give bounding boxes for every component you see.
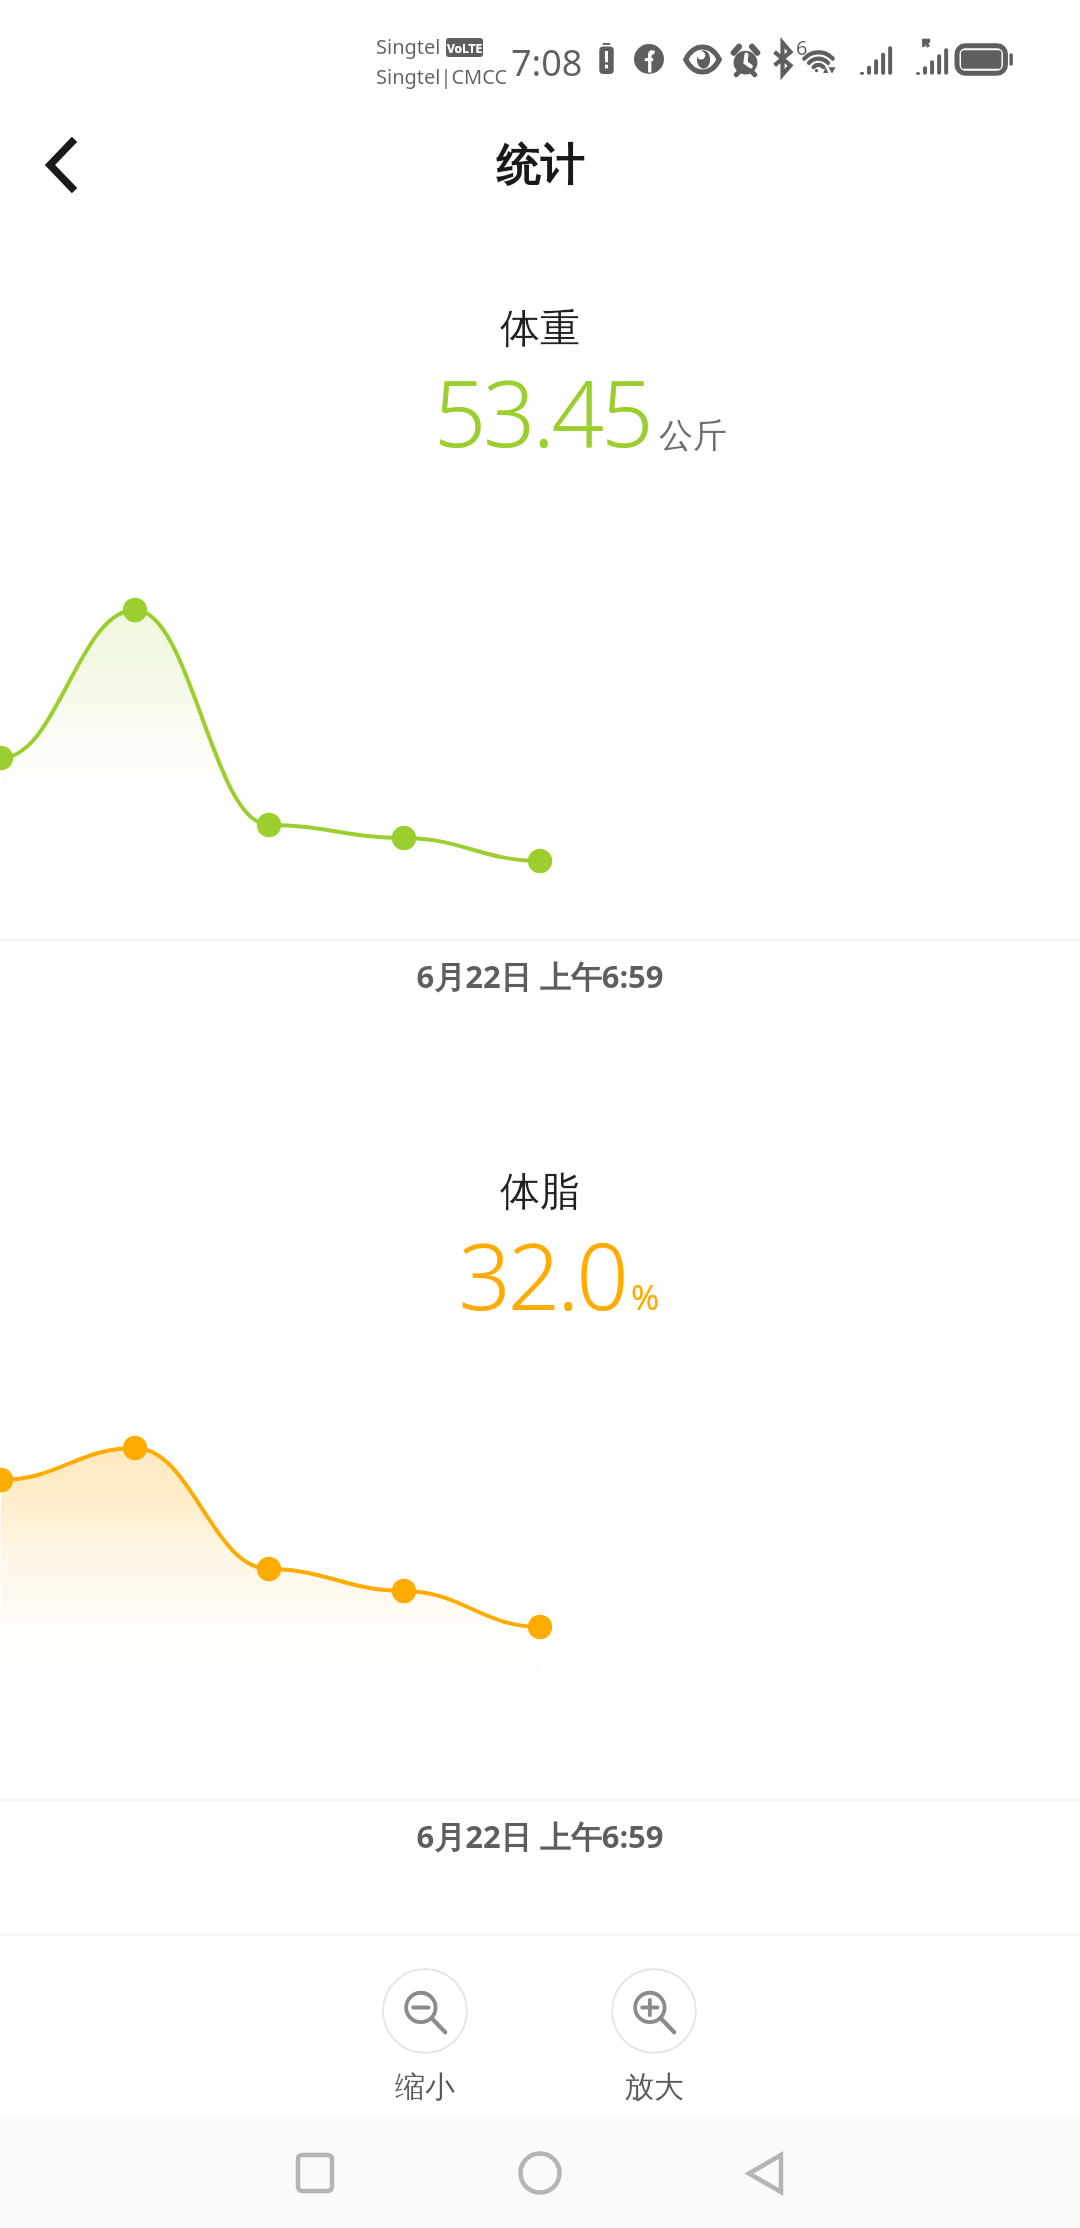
staticText: 53.45: [2, 349, 1080, 474]
staticText: 6月22日 上午6:59: [0, 955, 1080, 997]
staticText: 公斤: [659, 414, 727, 457]
staticText: 体重: [0, 303, 1080, 353]
staticText: %: [631, 1274, 660, 1320]
staticText: VoLTE: [447, 40, 483, 56]
staticText: Singtel|CMCC: [376, 63, 508, 90]
button[interactable]: Back: [23, 127, 99, 203]
staticText: 7:08: [511, 38, 583, 87]
button[interactable]: Zoom out: [364, 1968, 486, 2106]
staticText: 缩小: [395, 2068, 455, 2106]
staticText: 6: [796, 34, 808, 61]
staticText: 32.0: [2, 1212, 1080, 1337]
staticText: Singtel: [376, 33, 441, 60]
button[interactable]: Back: [705, 2113, 825, 2228]
staticText: 体脂: [0, 1166, 1080, 1216]
staticText: 6月22日 上午6:59: [0, 1815, 1080, 1857]
staticText: 放大: [624, 2068, 684, 2106]
button[interactable]: Zoom in: [593, 1968, 715, 2106]
button[interactable]: Home: [480, 2113, 600, 2228]
staticText: 统计: [496, 138, 584, 193]
button[interactable]: Recents: [255, 2113, 375, 2228]
